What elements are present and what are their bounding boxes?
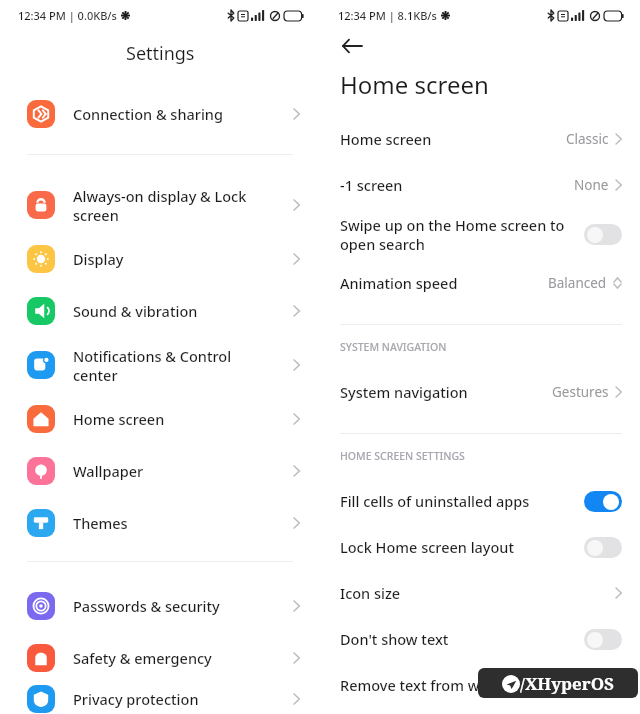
button[interactable]: Passwords & security [0,580,320,632]
staticText: -1 screen [340,175,574,195]
staticText: Passwords & security [73,596,293,616]
button[interactable]: Icon size [320,570,640,616]
staticText: Always-on display & Lock screen [73,186,293,225]
staticText: Display [73,249,293,269]
staticText: System navigation [340,382,552,402]
button[interactable]: System navigation [320,369,640,415]
staticText: Home screen [340,129,566,149]
button[interactable]: Remove text from widgets [320,662,640,708]
staticText: Home screen [340,68,489,101]
button[interactable]: Lock Home screen layout [320,524,640,570]
staticText: Lock Home screen layout [340,537,576,557]
staticText: Themes [73,513,293,533]
button[interactable]: Notifications & Control center [0,337,320,393]
staticText: Don't show text [340,629,576,649]
staticText: Connection & sharing [73,104,293,124]
button[interactable]: Don't show text [584,629,622,650]
button[interactable]: Swipe up on the Home screen to open sear… [320,208,640,260]
staticText: Notifications & Control center [73,346,293,385]
staticText: SYSTEM NAVIGATION [340,340,447,354]
staticText: Animation speed [340,273,548,293]
button[interactable]: Display [0,233,320,285]
staticText: Fill cells of uninstalled apps [340,491,576,511]
button[interactable]: Fill cells of uninstalled apps [584,491,622,512]
button[interactable]: Back [336,30,368,62]
button[interactable]: Wallpaper [0,445,320,497]
staticText: Balanced [548,274,607,292]
button[interactable]: Animation speed [320,260,640,306]
button[interactable]: Home screen [0,393,320,445]
staticText: HOME SCREEN SETTINGS [340,449,465,463]
button[interactable]: Swipe up on the Home screen to open sear… [584,224,622,245]
staticText: Privacy protection [73,689,293,709]
button[interactable]: Remove text from widgets [584,675,622,696]
button[interactable]: Themes [0,497,320,549]
staticText: Classic [566,130,609,148]
staticText: Icon size [340,583,615,603]
staticText: None [574,176,609,194]
button[interactable]: Fill cells of uninstalled apps [320,478,640,524]
staticText: Sound & vibration [73,301,293,321]
button[interactable]: Privacy protection [0,684,320,714]
button[interactable]: Always-on display & Lock screen [0,177,320,233]
staticText: Safety & emergency [73,648,293,668]
button[interactable]: -1 screen [320,162,640,208]
staticText: Wallpaper [73,461,293,481]
button[interactable]: Home screen [320,116,640,162]
button[interactable]: Safety & emergency [0,632,320,684]
button[interactable]: Lock Home screen layout [584,537,622,558]
staticText: 12:34 PM | 8.1KB/s [338,8,437,23]
staticText: Settings [126,41,195,66]
button[interactable]: Connection & sharing [0,90,320,138]
button[interactable]: Don't show text [320,616,640,662]
staticText: /XHyperOS [520,672,614,695]
button[interactable]: Sound & vibration [0,285,320,337]
staticText: Swipe up on the Home screen to open sear… [340,215,576,254]
staticText: Gestures [552,383,609,401]
staticText: Home screen [73,409,293,429]
staticText: Remove text from widgets [340,675,576,695]
staticText: 12:34 PM | 0.0KB/s [18,8,117,23]
